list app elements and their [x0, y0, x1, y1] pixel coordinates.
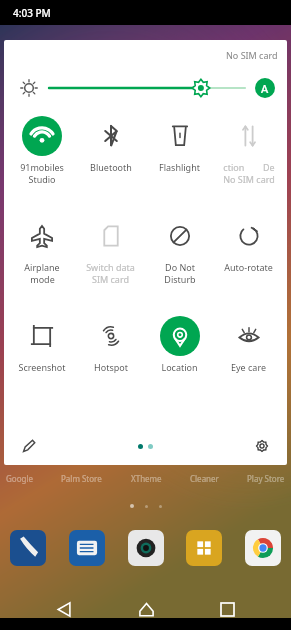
staticText: Cleaner [190, 473, 219, 484]
button[interactable]: App [186, 530, 222, 566]
staticText: ction De [223, 161, 275, 173]
button[interactable]: Flashlight [145, 114, 214, 173]
button[interactable]: App [128, 530, 164, 566]
button[interactable]: Screenshot [8, 314, 76, 373]
staticText: SIM card [92, 273, 129, 285]
staticText: Auto-rotate [224, 261, 273, 273]
staticText: 4:03 PM [13, 6, 51, 20]
staticText: Eye care [231, 361, 266, 373]
staticText: Hotspot [94, 361, 128, 373]
button[interactable]: Edit tiles [18, 435, 40, 457]
staticText: XTheme [131, 473, 162, 484]
staticText: mode [30, 273, 55, 285]
staticText: Disturb [164, 273, 196, 285]
staticText: Studio [28, 173, 56, 185]
button[interactable]: Airplane [8, 214, 76, 285]
staticText: Google [6, 473, 33, 484]
button[interactable]: Location [145, 314, 214, 373]
button[interactable]: Eye care [214, 314, 283, 373]
staticText: 91mobiles [20, 161, 64, 173]
staticText: Do Not [165, 261, 195, 273]
staticText: Switch data [86, 261, 135, 273]
staticText: A [261, 81, 269, 96]
button[interactable]: Home [129, 592, 163, 626]
button[interactable]: App [69, 530, 105, 566]
button[interactable]: 91mobiles [8, 114, 76, 185]
button[interactable]: ction De [214, 114, 283, 185]
staticText: Flashlight [159, 161, 200, 173]
staticText: Play Store [247, 473, 285, 484]
button[interactable]: Auto brightness [255, 78, 275, 98]
staticText: No SIM card [226, 49, 278, 61]
staticText: Airplane [24, 261, 60, 273]
staticText: Bluetooth [90, 161, 132, 173]
button[interactable]: Switch data [76, 214, 145, 285]
button[interactable]: App [245, 530, 281, 566]
button[interactable]: Do Not [145, 214, 214, 285]
button[interactable]: Back [47, 592, 81, 626]
button[interactable]: Bluetooth [76, 114, 145, 173]
button[interactable]: Brightness [49, 77, 245, 99]
staticText: Palm Store [61, 473, 102, 484]
staticText: Screenshot [18, 361, 66, 373]
button[interactable]: Settings [251, 435, 273, 457]
button[interactable]: Recents [210, 592, 244, 626]
button[interactable]: App [10, 530, 46, 566]
staticText: Location [161, 361, 198, 373]
button[interactable]: Auto-rotate [214, 214, 283, 273]
staticText: No SIM card [223, 173, 275, 185]
button[interactable]: Hotspot [76, 314, 145, 373]
